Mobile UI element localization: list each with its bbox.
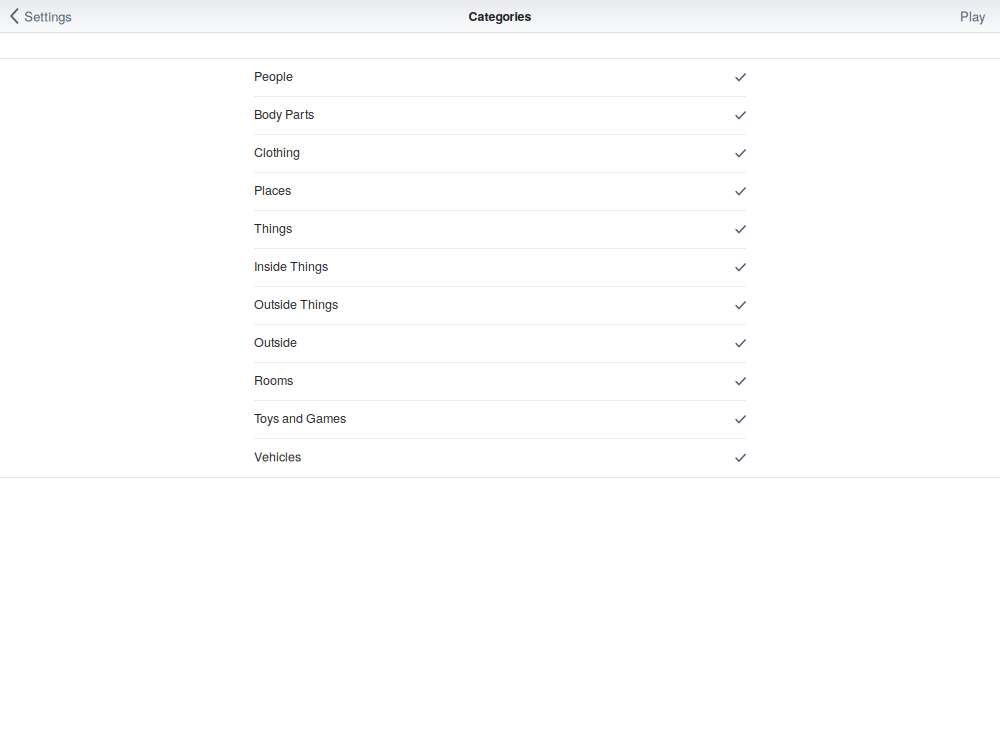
staticText: People [254, 67, 293, 84]
staticText: Outside [254, 333, 297, 350]
button[interactable]: Settings [0, 0, 81, 32]
staticText: Settings [24, 7, 71, 25]
staticText: Categories [468, 7, 531, 25]
button[interactable]: Body Parts [254, 97, 746, 135]
button[interactable]: Outside Things [254, 287, 746, 325]
button[interactable]: Things [254, 211, 746, 249]
staticText: Toys and Games [254, 409, 346, 426]
button[interactable]: Vehicles [254, 439, 746, 477]
button[interactable]: Places [254, 173, 746, 211]
button[interactable]: Inside Things [254, 249, 746, 287]
staticText: Play [960, 7, 985, 25]
staticText: Body Parts [254, 105, 314, 122]
staticText: Rooms [254, 371, 293, 388]
button[interactable]: Play [946, 0, 1000, 32]
staticText: Places [254, 181, 291, 198]
staticText: Inside Things [254, 257, 328, 274]
button[interactable]: Clothing [254, 135, 746, 173]
button[interactable]: Toys and Games [254, 401, 746, 439]
staticText: Outside Things [254, 295, 338, 312]
button[interactable]: Rooms [254, 363, 746, 401]
staticText: Things [254, 219, 292, 236]
staticText: Vehicles [254, 447, 301, 465]
button[interactable]: Outside [254, 325, 746, 363]
button[interactable]: People [254, 59, 746, 97]
staticText: Clothing [254, 143, 300, 160]
